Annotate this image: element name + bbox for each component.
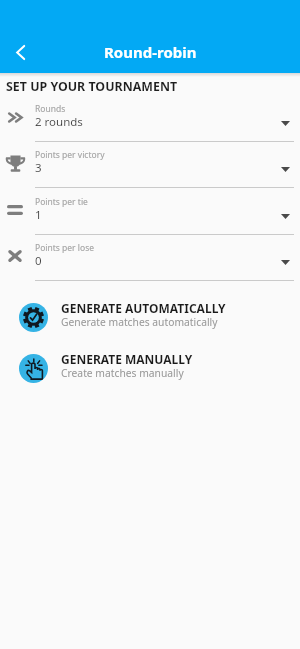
staticText: GENERATE AUTOMATICALLY [61, 300, 226, 316]
button[interactable]: GENERATE AUTOMATICALLY [0, 300, 300, 340]
button[interactable]: GENERATE MANUALLY [0, 351, 300, 391]
staticText: Round-robin [104, 42, 197, 62]
button[interactable]: Points per tie [0, 194, 300, 241]
button[interactable]: Back [1, 32, 41, 72]
staticText: Create matches manually [61, 366, 184, 380]
staticText: Points per lose [35, 242, 95, 254]
button[interactable]: Rounds [0, 101, 300, 148]
button[interactable]: Points per lose [0, 240, 300, 287]
staticText: Points per tie [35, 196, 88, 208]
staticText: Rounds [35, 103, 66, 115]
staticText: 0 [35, 253, 42, 269]
staticText: SET UP YOUR TOURNAMENT [6, 78, 178, 95]
staticText: GENERATE MANUALLY [61, 351, 193, 367]
button[interactable]: Points per victory [0, 147, 300, 194]
staticText: 2 rounds [35, 114, 83, 130]
staticText: 1 [35, 207, 42, 223]
staticText: Points per victory [35, 149, 105, 161]
staticText: Generate matches automatically [61, 315, 218, 329]
staticText: 3 [35, 160, 42, 176]
